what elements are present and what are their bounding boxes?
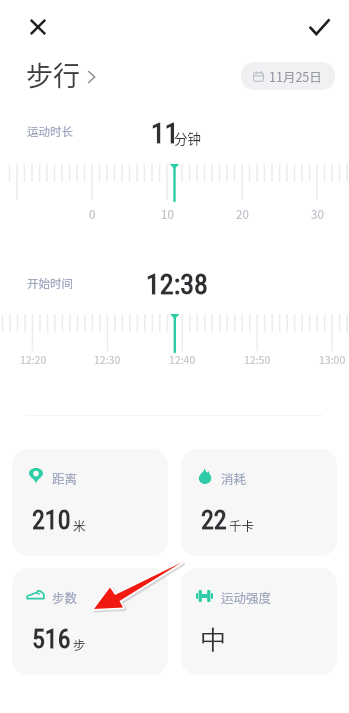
button[interactable]: 消耗 xyxy=(181,449,337,556)
staticText: 距离 xyxy=(52,469,78,487)
staticText: 12:40 xyxy=(169,352,196,367)
staticText: 12:38 xyxy=(146,268,208,301)
button[interactable]: 步数 xyxy=(12,568,168,675)
staticText: 20 xyxy=(236,206,249,223)
staticText: 开始时间 xyxy=(27,275,73,292)
button[interactable]: 距离 xyxy=(12,449,168,556)
staticText: 10 xyxy=(161,206,174,223)
staticText: 210 xyxy=(32,505,71,535)
staticText: 步行 xyxy=(26,55,80,94)
button[interactable]: Confirm xyxy=(304,13,334,43)
staticText: 12:50 xyxy=(244,352,271,367)
button[interactable]: Close xyxy=(24,13,52,41)
staticText: 运动强度 xyxy=(221,588,272,606)
staticText: 13:00 xyxy=(319,352,346,367)
staticText: 步 xyxy=(73,635,86,653)
staticText: 11 xyxy=(151,117,179,150)
staticText: 中 xyxy=(201,624,227,657)
staticText: 12:30 xyxy=(94,352,121,367)
staticText: 22 xyxy=(201,505,227,535)
staticText: 11月25日 xyxy=(269,67,322,85)
staticText: 消耗 xyxy=(221,469,247,487)
staticText: 0 xyxy=(89,206,96,223)
staticText: 分钟 xyxy=(174,128,201,148)
staticText: 米 xyxy=(73,516,86,534)
staticText: 30 xyxy=(311,206,324,223)
button[interactable]: 步行 xyxy=(21,52,101,97)
staticText: 千卡 xyxy=(229,516,255,534)
staticText: 12:20 xyxy=(20,352,47,367)
staticText: 步数 xyxy=(52,588,78,606)
button[interactable]: 运动强度 xyxy=(181,568,337,675)
staticText: 运动时长 xyxy=(27,123,73,140)
button[interactable]: 11月25日 xyxy=(241,62,335,90)
staticText: 516 xyxy=(32,624,71,654)
